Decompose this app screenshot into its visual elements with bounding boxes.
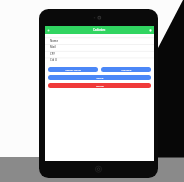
button[interactable] [45,44,154,51]
staticText: Alterar senha [65,68,81,71]
staticText: Cadastro [93,28,106,32]
staticText: Salvar [96,76,104,79]
staticText: Nome [50,39,59,43]
button[interactable] [45,38,154,45]
button[interactable]: Menu [47,29,50,32]
button[interactable]: Save [149,29,152,32]
staticText: Cancelar [121,68,132,71]
button[interactable]: Cancelar [101,67,151,72]
button[interactable]: Alterar senha [48,67,98,72]
button[interactable] [45,58,154,65]
staticText: Excluir [96,84,104,87]
button[interactable]: Cadastro [45,26,154,34]
button[interactable]: Excluir [48,83,151,88]
staticText: Mail [50,45,56,49]
staticText: CPF [50,52,55,56]
button[interactable] [45,51,154,58]
button[interactable]: Salvar [48,75,151,80]
staticText: Cid U [50,58,57,62]
